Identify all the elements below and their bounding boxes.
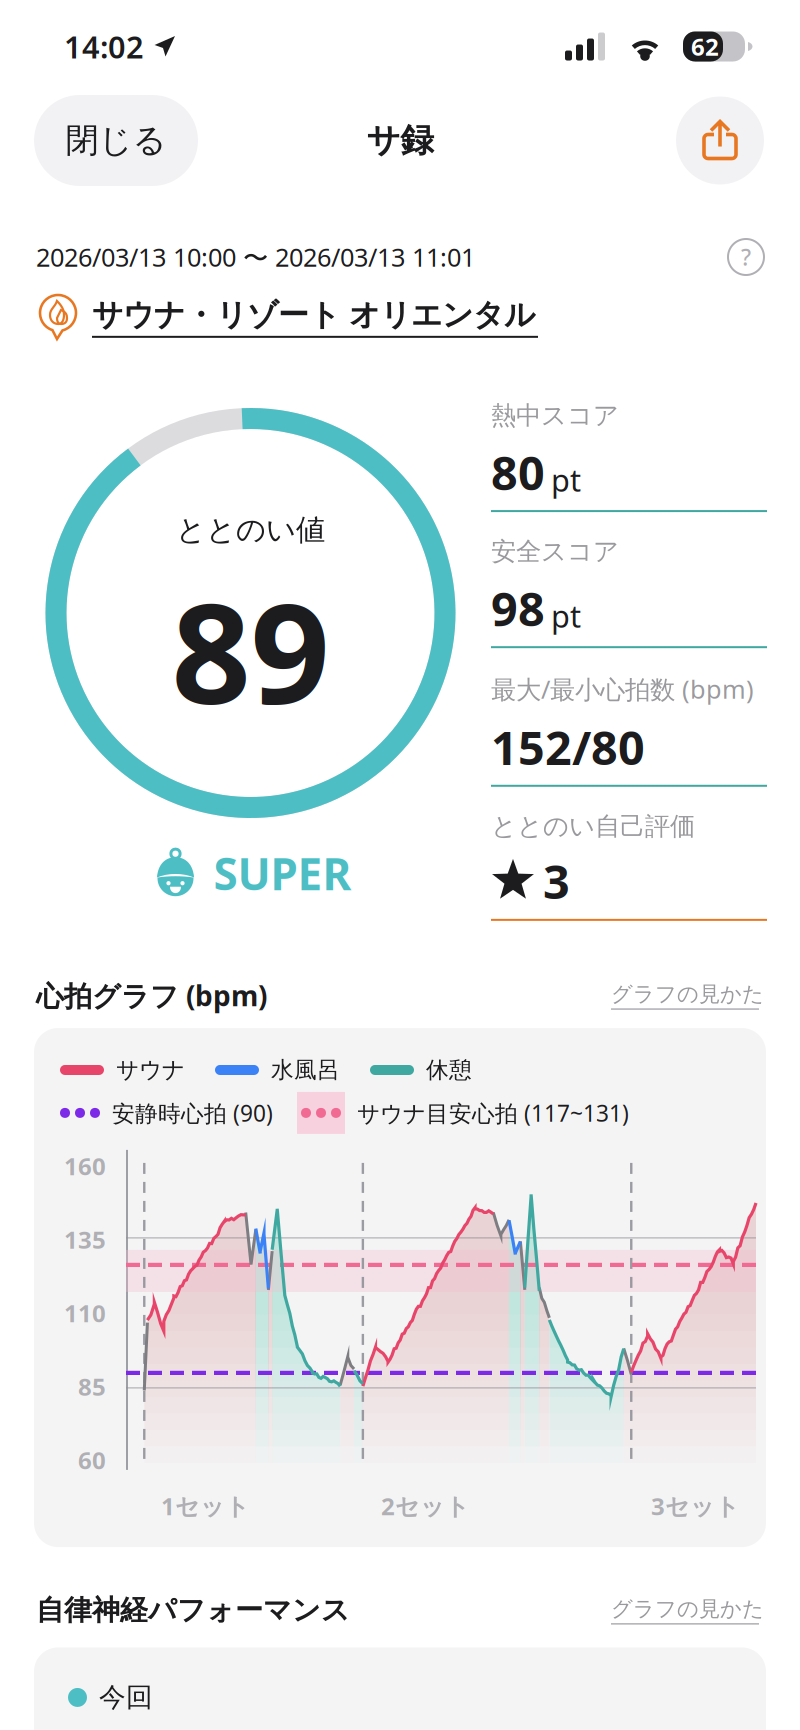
staticText: 熱中スコア [491,400,619,431]
staticText: 3 [543,850,570,912]
staticText: 水風呂 [271,1056,340,1084]
staticText: 160 [64,1150,106,1182]
staticText: 110 [64,1297,106,1329]
button[interactable]: グラフの見かた [611,981,764,1010]
staticText: ととのい自己評価 [491,811,695,842]
staticText: 89 [171,558,329,742]
staticText: ととのい値 [176,512,325,548]
staticText: サウナ・リゾート オリエンタル [92,296,535,334]
button[interactable]: Share [676,96,764,184]
staticText: 休憩 [426,1056,472,1084]
staticText: 80 [491,441,545,503]
button[interactable]: 閉じる [34,95,198,186]
staticText: グラフの見かた [611,981,764,1007]
staticText: 2026/03/13 10:00 〜 2026/03/13 11:01 [36,240,475,274]
staticText: 62 [691,31,719,62]
staticText: 85 [78,1370,106,1402]
button[interactable]: グラフの見かた [611,1596,764,1625]
staticText: SUPER [213,844,351,902]
staticText: 最大/最小心拍数 (bpm) [491,672,754,706]
staticText: pt [551,459,581,500]
staticText: サ録 [366,120,433,161]
staticText: 3セット [651,1490,740,1522]
staticText: 135 [64,1223,106,1255]
staticText: グラフの見かた [611,1596,764,1622]
staticText: 自律神経パフォーマンス [36,1593,350,1627]
staticText: 14:02 [64,26,144,67]
staticText: 152/80 [491,716,645,778]
button[interactable]: Help [728,239,764,275]
staticText: サウナ目安心拍 (117~131) [357,1098,629,1128]
staticText: 今回 [99,1681,153,1714]
staticText: 60 [78,1444,106,1476]
staticText: 1セット [161,1490,250,1522]
staticText: 閉じる [65,120,166,161]
staticText: 安静時心拍 (90) [112,1098,273,1128]
staticText: ? [741,242,751,272]
staticText: 98 [491,577,545,639]
staticText: サウナ [116,1056,185,1084]
staticText: pt [551,595,581,636]
staticText: 心拍グラフ (bpm) [36,977,267,1014]
staticText: 安全スコア [491,536,619,567]
staticText: 2セット [381,1490,470,1522]
button[interactable]: サウナ・リゾート オリエンタル [36,291,764,343]
